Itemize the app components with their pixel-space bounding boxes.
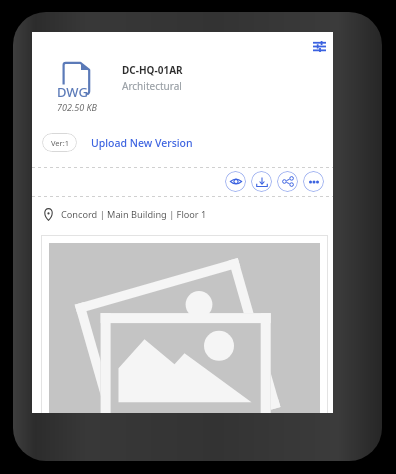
button[interactable]: Share [277,171,298,192]
staticText: Architectural [122,79,182,93]
staticText: 702.50 KB [57,101,97,113]
button[interactable]: Ver:1 [42,133,77,152]
button[interactable]: Concord | Main Building | Floor 1 [43,202,207,226]
staticText: Upload New Version [91,136,193,150]
button[interactable]: Upload New Version [91,133,193,152]
staticText: Ver:1 [51,138,69,148]
button[interactable]: Filter [303,36,333,57]
staticText: DC-HQ-01AR [122,63,183,77]
staticText: Concord | Main Building | Floor 1 [61,208,207,221]
staticText: DWG [57,83,88,101]
button[interactable]: Download [251,171,272,192]
button[interactable]: More [303,171,324,192]
button[interactable]: View [225,171,246,192]
